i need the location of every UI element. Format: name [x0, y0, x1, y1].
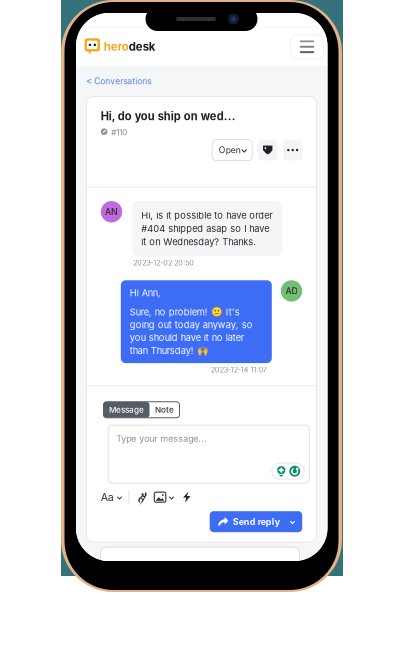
staticText: AD	[285, 286, 297, 296]
button[interactable]: Open	[212, 140, 252, 161]
staticText: Sure, no problem! 🙂 It's going out today…	[130, 306, 253, 356]
staticText: Hi, do you ship on wed...	[101, 109, 236, 123]
button[interactable]: More options	[283, 140, 302, 161]
button[interactable]: Send reply	[210, 511, 302, 532]
staticText: Aa	[101, 491, 114, 504]
button[interactable]: <	[86, 72, 151, 91]
staticText: Hi, is it possible to have order #404 sh…	[141, 210, 272, 247]
staticText: Send reply	[233, 516, 280, 527]
button[interactable]: Attach link	[135, 489, 148, 505]
staticText: Hi Ann,	[130, 287, 161, 298]
staticText: #110	[111, 127, 127, 137]
button[interactable]: Text format	[101, 488, 122, 506]
staticText: 2023-12-14 11:07	[211, 366, 267, 374]
staticText: <	[86, 76, 92, 87]
staticText: AN	[105, 206, 118, 217]
staticText: desk	[129, 40, 156, 54]
staticText: Open	[219, 145, 241, 155]
button[interactable]: Insert image	[148, 489, 174, 505]
button[interactable]: Tags	[258, 140, 277, 161]
staticText: Type your message...	[116, 433, 207, 444]
button[interactable]: Message	[103, 402, 149, 418]
staticText: 2023-12-02 20:50	[133, 259, 194, 267]
staticText: Conversations	[94, 76, 151, 86]
staticText: Message	[109, 405, 144, 415]
button[interactable]: Quick replies	[174, 489, 192, 505]
staticText: Note	[155, 405, 174, 415]
button[interactable]: Menu	[290, 35, 323, 59]
staticText: hero	[104, 40, 129, 54]
button[interactable]: Note	[149, 402, 179, 418]
